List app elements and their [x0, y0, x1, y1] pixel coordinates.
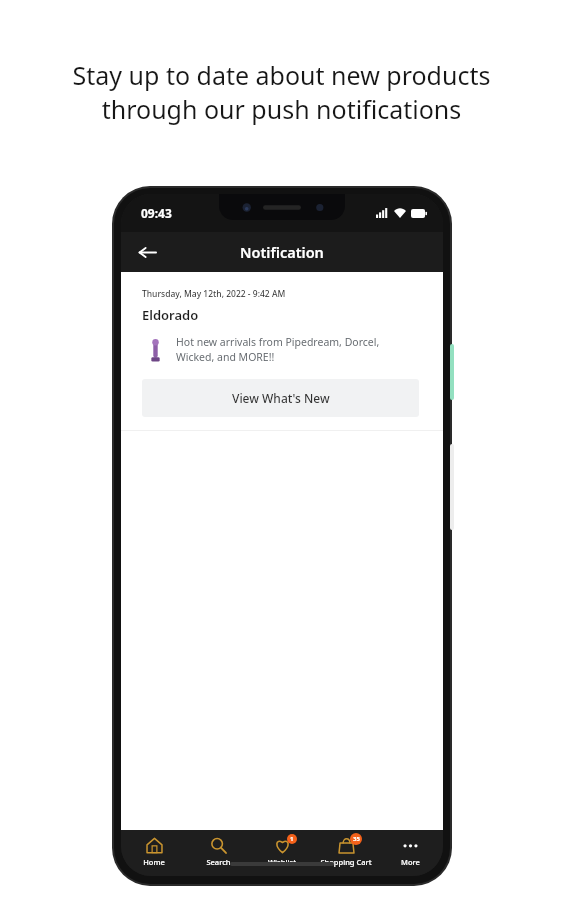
staticText: Wishlist	[268, 857, 296, 867]
staticText: 35	[353, 835, 360, 843]
button[interactable]: 35	[315, 835, 377, 869]
staticText: Search	[206, 857, 231, 867]
button[interactable]: Search	[187, 835, 249, 869]
button[interactable]: 1	[251, 835, 313, 869]
staticText: Thursday, May 12th, 2022 - 9:42 AM	[142, 288, 286, 300]
button[interactable]: Back	[127, 232, 167, 272]
button[interactable]: View What's New	[142, 379, 419, 417]
staticText: Shopping Cart	[320, 857, 372, 867]
staticText: More	[401, 857, 420, 867]
staticText: View What's New	[232, 390, 330, 406]
staticText: Eldorado	[142, 306, 199, 324]
button[interactable]: Home	[123, 835, 185, 869]
staticText: Hot new arrivals from Pipedream, Dorcel,…	[176, 335, 419, 364]
staticText: Stay up to date about new products throu…	[44, 58, 519, 126]
button[interactable]: More	[379, 835, 441, 869]
staticText: Home	[143, 857, 165, 867]
staticText: 09:43	[141, 205, 172, 221]
staticText: Notification	[240, 242, 324, 262]
staticText: 1	[290, 835, 294, 843]
